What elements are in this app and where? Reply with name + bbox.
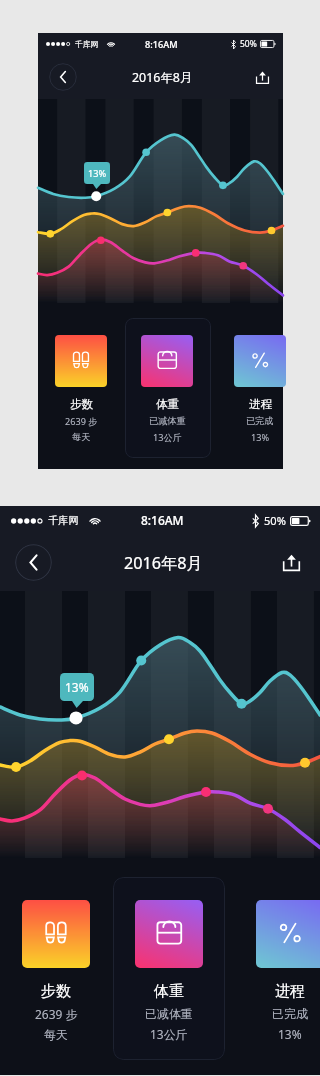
staticText: 13公斤 bbox=[150, 1026, 188, 1042]
button[interactable]: 步数 bbox=[22, 900, 90, 1042]
button[interactable]: Share bbox=[277, 548, 306, 577]
staticText: 13公斤 bbox=[153, 431, 182, 443]
button[interactable]: Share bbox=[251, 66, 273, 88]
staticText: 8:16AM bbox=[141, 512, 184, 528]
staticText: 2639 步 bbox=[35, 1006, 78, 1022]
staticText: 2016年8月 bbox=[124, 552, 203, 574]
staticText: 步数 bbox=[70, 397, 93, 411]
staticText: 2016年8月 bbox=[132, 69, 193, 86]
staticText: 进程 bbox=[275, 982, 305, 1001]
button[interactable]: 体重 bbox=[141, 335, 193, 443]
button[interactable]: Back bbox=[15, 544, 52, 581]
staticText: 每天 bbox=[72, 431, 91, 443]
staticText: 体重 bbox=[156, 397, 179, 411]
staticText: 13% bbox=[251, 431, 270, 443]
staticText: 每天 bbox=[44, 1027, 68, 1042]
staticText: 8:16AM bbox=[145, 38, 178, 50]
staticText: 50% bbox=[264, 513, 286, 528]
staticText: 13% bbox=[88, 167, 107, 179]
staticText: 千库网 bbox=[75, 39, 99, 49]
staticText: 2639 步 bbox=[65, 415, 98, 427]
staticText: 进程 bbox=[249, 397, 272, 411]
staticText: 已完成 bbox=[246, 415, 274, 427]
button[interactable]: 步数 bbox=[55, 335, 107, 443]
staticText: 千库网 bbox=[48, 514, 79, 527]
staticText: 已减体重 bbox=[149, 415, 186, 427]
staticText: 体重 bbox=[154, 982, 184, 1001]
button[interactable]: 进程 bbox=[234, 335, 286, 443]
staticText: 已减体重 bbox=[145, 1006, 193, 1021]
button[interactable]: Back bbox=[49, 63, 77, 91]
button[interactable]: 体重 bbox=[135, 900, 203, 1042]
staticText: 50% bbox=[240, 38, 257, 50]
staticText: 已完成 bbox=[272, 1006, 308, 1021]
button[interactable]: 进程 bbox=[256, 900, 320, 1042]
staticText: 13% bbox=[65, 679, 89, 695]
staticText: 13% bbox=[278, 1026, 302, 1042]
staticText: 步数 bbox=[41, 982, 71, 1001]
